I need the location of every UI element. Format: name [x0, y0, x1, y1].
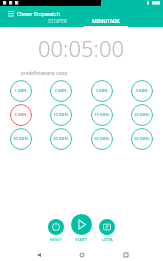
- button[interactable]: 3 MIN.: [91, 80, 113, 102]
- button[interactable]: 10 MIN.: [50, 104, 72, 126]
- staticText: 20 MIN.: [134, 112, 150, 118]
- staticText: MINUTNIK: [92, 17, 120, 24]
- staticText: START: [75, 237, 88, 243]
- button[interactable]: 4 MIN.: [131, 80, 153, 102]
- button[interactable]: STOPER: [36, 17, 80, 27]
- button[interactable]: MINUTNIK: [84, 17, 128, 27]
- staticText: STOPER: [48, 17, 68, 24]
- staticText: RESET: [50, 237, 62, 243]
- staticText: 4 MIN.: [135, 88, 149, 94]
- staticText: predefiniowane czasy: [21, 70, 68, 76]
- staticText: 3 MIN.: [95, 88, 109, 94]
- button[interactable]: START: [71, 214, 92, 243]
- button[interactable]: Back: [33, 249, 44, 260]
- staticText: LISTA: [102, 237, 113, 243]
- staticText: 30 MIN.: [13, 136, 29, 142]
- button[interactable]: 60 MIN.: [131, 128, 153, 150]
- button[interactable]: 20 MIN.: [131, 104, 153, 126]
- staticText: 5 MIN.: [14, 112, 28, 118]
- button[interactable]: 1 MIN.: [10, 80, 32, 102]
- button[interactable]: 15 MIN.: [91, 104, 113, 126]
- button[interactable]: 5 MIN.: [10, 104, 32, 126]
- button[interactable]: 30 MIN.: [10, 128, 32, 150]
- staticText: 40 MIN.: [53, 136, 69, 142]
- staticText: 00:05:00: [38, 33, 125, 63]
- staticText: 1 MIN.: [14, 88, 28, 94]
- button[interactable]: 2 MIN.: [50, 80, 72, 102]
- button[interactable]: RESET: [48, 219, 64, 243]
- button[interactable]: LISTA: [99, 219, 115, 243]
- staticText: 15 MIN.: [94, 112, 110, 118]
- staticText: 10 MIN.: [53, 112, 69, 118]
- staticText: 2 MIN.: [54, 88, 68, 94]
- button[interactable]: 50 MIN.: [91, 128, 113, 150]
- button[interactable]: Home: [76, 249, 87, 260]
- staticText: 50 MIN.: [94, 136, 110, 142]
- button[interactable]: 40 MIN.: [50, 128, 72, 150]
- staticText: Clever Stopwatch: [17, 10, 60, 17]
- staticText: 60 MIN.: [134, 136, 150, 142]
- button[interactable]: Open navigation menu: [5, 8, 16, 19]
- button[interactable]: Recent apps: [120, 249, 131, 260]
